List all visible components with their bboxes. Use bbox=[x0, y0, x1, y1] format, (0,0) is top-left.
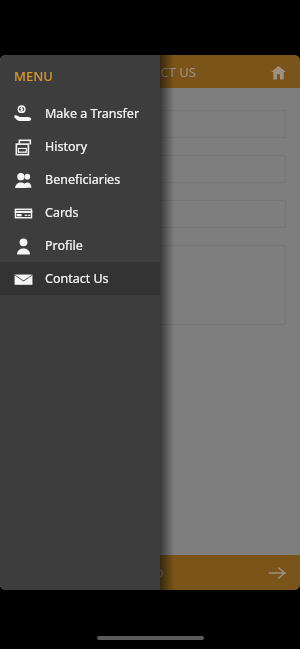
staticText: MENU bbox=[14, 67, 53, 85]
button[interactable]: History bbox=[0, 130, 160, 163]
staticText: SEND bbox=[130, 564, 164, 582]
button[interactable]: Contact Us bbox=[0, 262, 160, 295]
staticText: Cards bbox=[45, 204, 79, 221]
staticText: History bbox=[45, 138, 88, 155]
button[interactable]: Beneficiaries bbox=[0, 163, 160, 196]
staticText: CONTACT US bbox=[118, 63, 196, 81]
button[interactable]: Send bbox=[262, 558, 292, 588]
staticText: Contact Us bbox=[45, 270, 109, 287]
button[interactable]: Make a Transfer bbox=[0, 96, 160, 130]
button[interactable]: Cards bbox=[0, 196, 160, 229]
button[interactable]: Home bbox=[263, 57, 293, 87]
button[interactable]: Profile bbox=[0, 229, 160, 262]
staticText: Profile bbox=[45, 237, 83, 254]
staticText: Beneficiaries bbox=[45, 171, 121, 188]
staticText: Make a Transfer bbox=[45, 105, 140, 122]
